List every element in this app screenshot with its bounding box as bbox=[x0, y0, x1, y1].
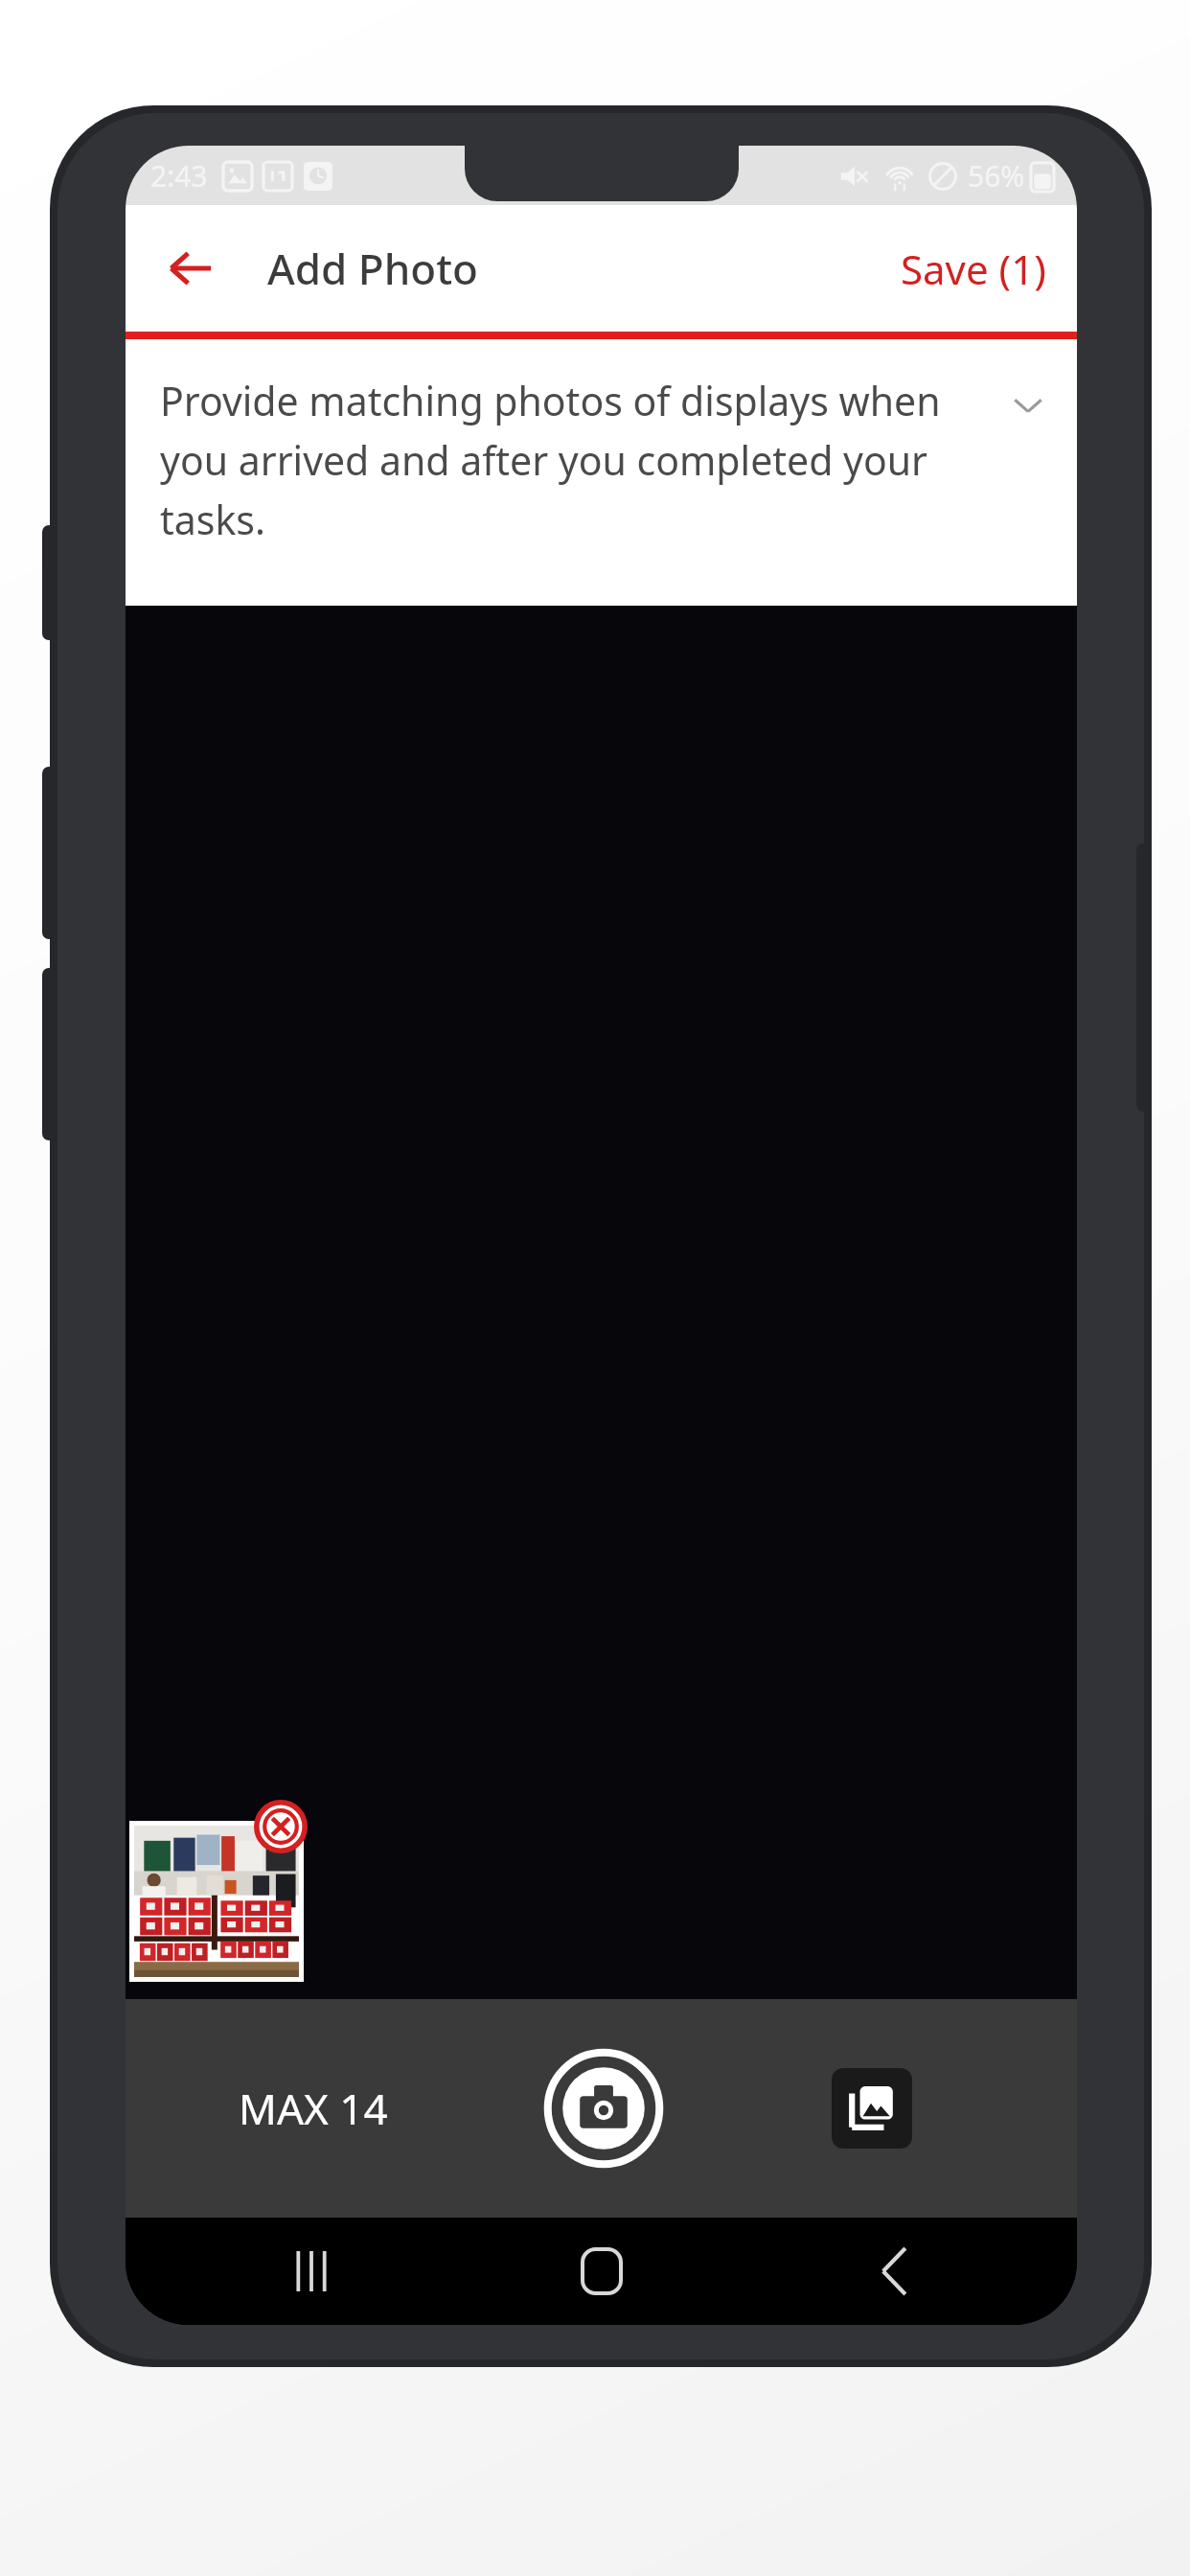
button[interactable]: Provide matching photos of displays when… bbox=[126, 339, 1077, 606]
staticText: Provide matching photos of displays when… bbox=[160, 374, 993, 546]
button[interactable]: Recent apps bbox=[271, 2231, 352, 2311]
button[interactable]: Save (1) bbox=[891, 228, 1056, 310]
button[interactable]: Open gallery bbox=[832, 2068, 912, 2149]
button[interactable]: Take photo bbox=[544, 2049, 663, 2168]
staticText: Save (1) bbox=[901, 241, 1046, 296]
staticText: 56% bbox=[968, 156, 1025, 195]
button[interactable]: Home bbox=[561, 2231, 642, 2311]
other: Collapse bbox=[1002, 379, 1054, 431]
button[interactable]: Back bbox=[855, 2231, 935, 2311]
staticText: 2:43 bbox=[150, 156, 208, 195]
staticText: MAX 14 bbox=[239, 2080, 388, 2137]
staticText: Add Photo bbox=[267, 240, 478, 297]
button[interactable]: Remove photo bbox=[254, 1800, 308, 1853]
button[interactable]: Back bbox=[154, 232, 227, 305]
button[interactable] bbox=[134, 1826, 299, 1977]
